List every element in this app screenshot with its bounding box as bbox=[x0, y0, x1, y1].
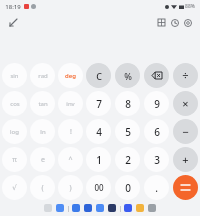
button[interactable]: Settings bbox=[181, 16, 194, 29]
button[interactable]: log bbox=[2, 119, 27, 144]
button[interactable]: 6 bbox=[144, 119, 169, 144]
button[interactable]: π bbox=[2, 147, 27, 172]
staticText: ) bbox=[69, 183, 72, 193]
button[interactable]: App bbox=[72, 204, 80, 212]
button[interactable]: 9 bbox=[144, 91, 169, 116]
staticText: ! bbox=[70, 127, 72, 137]
button[interactable]: App bbox=[148, 204, 156, 212]
button[interactable]: 7 bbox=[86, 91, 111, 116]
staticText: C bbox=[96, 70, 102, 82]
staticText: 8 bbox=[125, 97, 131, 111]
button[interactable]: Equals bbox=[173, 175, 198, 200]
staticText: − bbox=[182, 124, 189, 139]
button[interactable]: + bbox=[173, 147, 198, 172]
staticText: e bbox=[41, 155, 45, 165]
button[interactable]: App bbox=[96, 204, 104, 212]
button[interactable]: Unit converter bbox=[155, 16, 168, 29]
button[interactable]: e bbox=[30, 147, 55, 172]
button[interactable]: 5 bbox=[115, 119, 140, 144]
button[interactable]: App bbox=[108, 204, 116, 212]
staticText: 3 bbox=[154, 153, 160, 167]
staticText: 88% bbox=[185, 3, 195, 10]
button[interactable]: Expand bbox=[6, 15, 20, 29]
staticText: 5 bbox=[125, 125, 131, 139]
button[interactable]: × bbox=[173, 91, 198, 116]
staticText: 00 bbox=[94, 182, 104, 193]
staticText: rad bbox=[38, 72, 48, 80]
button[interactable]: App bbox=[124, 204, 132, 212]
staticText: ( bbox=[41, 183, 44, 193]
button[interactable]: % bbox=[115, 63, 140, 88]
staticText: log bbox=[10, 128, 19, 136]
button[interactable]: 2 bbox=[115, 147, 140, 172]
staticText: + bbox=[182, 152, 189, 167]
button[interactable]: App bbox=[56, 204, 64, 212]
button[interactable]: ( bbox=[30, 175, 55, 200]
staticText: tan bbox=[38, 100, 48, 108]
button[interactable]: ^ bbox=[58, 147, 83, 172]
button[interactable]: 1 bbox=[86, 147, 111, 172]
button[interactable]: sin bbox=[2, 63, 27, 88]
button[interactable]: History bbox=[168, 16, 181, 29]
staticText: cos bbox=[10, 100, 20, 108]
button[interactable]: ! bbox=[58, 119, 83, 144]
button[interactable]: Backspace bbox=[144, 63, 169, 88]
button[interactable]: √ bbox=[2, 175, 27, 200]
staticText: ^ bbox=[68, 155, 73, 165]
staticText: 1 bbox=[96, 153, 102, 167]
staticText: ln bbox=[40, 128, 46, 136]
button[interactable]: inv bbox=[58, 91, 83, 116]
button[interactable]: rad bbox=[30, 63, 55, 88]
button[interactable]: ÷ bbox=[173, 63, 198, 88]
button[interactable]: App bbox=[44, 204, 52, 212]
button[interactable]: App bbox=[136, 204, 144, 212]
staticText: sin bbox=[10, 72, 19, 80]
staticText: ÷ bbox=[182, 68, 189, 83]
button[interactable]: 00 bbox=[86, 175, 111, 200]
staticText: 18:19 bbox=[5, 3, 21, 11]
staticText: 6 bbox=[154, 125, 160, 139]
button[interactable]: tan bbox=[30, 91, 55, 116]
button[interactable]: 3 bbox=[144, 147, 169, 172]
staticText: deg bbox=[65, 72, 76, 80]
button[interactable]: 0 bbox=[115, 175, 140, 200]
button[interactable]: 8 bbox=[115, 91, 140, 116]
button[interactable]: ln bbox=[30, 119, 55, 144]
staticText: inv bbox=[66, 100, 75, 108]
staticText: √ bbox=[12, 184, 17, 192]
button[interactable]: ) bbox=[58, 175, 83, 200]
staticText: × bbox=[182, 96, 189, 111]
staticText: 7 bbox=[96, 97, 102, 111]
button[interactable]: cos bbox=[2, 91, 27, 116]
button[interactable]: deg bbox=[58, 63, 83, 88]
button[interactable]: C bbox=[86, 63, 111, 88]
staticText: π bbox=[12, 155, 17, 165]
button[interactable]: − bbox=[173, 119, 198, 144]
staticText: 2 bbox=[125, 153, 131, 167]
staticText: 4 bbox=[96, 125, 102, 139]
button[interactable]: . bbox=[144, 175, 169, 200]
button[interactable]: App bbox=[84, 204, 92, 212]
staticText: % bbox=[124, 70, 132, 82]
button[interactable]: 4 bbox=[86, 119, 111, 144]
staticText: 9 bbox=[154, 97, 160, 111]
staticText: 0 bbox=[125, 181, 131, 195]
staticText: . bbox=[155, 181, 158, 195]
